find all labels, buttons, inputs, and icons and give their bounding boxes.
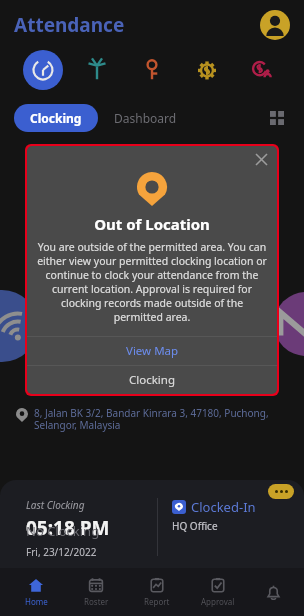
staticText: Clocked-In <box>191 498 256 516</box>
staticText: 05:18 PM <box>26 515 110 541</box>
staticText: Approval <box>201 596 235 607</box>
staticText: Out of Location <box>94 214 210 234</box>
staticText: You are outside of the permitted area. Y… <box>35 240 269 324</box>
button[interactable]: Profile <box>260 10 290 40</box>
staticText: 8, Jalan BK 3/2, Bandar Kinrara 3, 47180… <box>34 406 288 432</box>
button[interactable]: Notifications <box>253 572 293 612</box>
staticText: Clocking <box>30 110 82 126</box>
button[interactable]: Claim <box>132 50 172 90</box>
staticText: HQ Office <box>172 519 218 533</box>
staticText: Home <box>25 596 48 607</box>
staticText: Dashboard <box>114 110 177 126</box>
staticText: No Clocking <box>26 522 100 540</box>
staticText: Last Clocking <box>26 498 85 512</box>
staticText: Roster <box>84 596 109 607</box>
staticText: Report <box>144 596 170 607</box>
button[interactable]: Roster <box>71 577 121 607</box>
button[interactable]: Dashboard <box>98 104 193 132</box>
button[interactable]: Payroll <box>187 50 227 90</box>
button[interactable]: Report <box>132 577 182 607</box>
button[interactable]: Approval <box>193 577 243 607</box>
button[interactable]: Attendance <box>23 50 63 90</box>
button[interactable]: Home <box>11 577 61 607</box>
staticText: View Map <box>126 343 179 359</box>
staticText: Clocking <box>129 372 175 388</box>
staticText: Fri, 23/12/2022 <box>26 545 97 559</box>
button[interactable]: Clocking <box>14 104 98 132</box>
button[interactable]: Grid view <box>264 105 290 131</box>
button[interactable]: More options <box>268 484 294 499</box>
button[interactable]: Clocking <box>27 366 277 394</box>
button[interactable]: Leave <box>77 50 117 90</box>
button[interactable]: View Map <box>27 337 277 365</box>
button[interactable]: Benefits <box>241 50 281 90</box>
button[interactable]: Close <box>251 149 271 169</box>
staticText: Attendance <box>14 12 125 38</box>
